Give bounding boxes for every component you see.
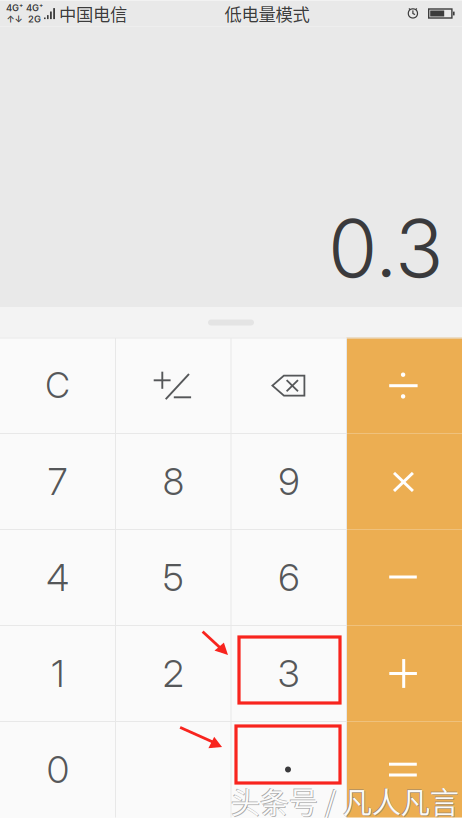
- button[interactable]: Plus: [346, 625, 462, 721]
- staticText: 9: [278, 459, 299, 504]
- staticText: 中国电信: [59, 1, 127, 26]
- staticText: 低电量模式: [224, 1, 309, 26]
- button[interactable]: 5: [115, 529, 231, 625]
- button[interactable]: 6: [231, 529, 346, 625]
- staticText: 4G⁺: [6, 2, 23, 13]
- staticText: 0: [47, 747, 69, 792]
- staticText: 1: [51, 651, 64, 696]
- staticText: ↑↓: [6, 13, 22, 25]
- button[interactable]: Minus: [346, 529, 462, 625]
- staticText: 4: [46, 555, 69, 600]
- staticText: 2G: [28, 13, 41, 25]
- staticText: 8: [163, 459, 184, 504]
- button[interactable]: Delete: [231, 337, 346, 433]
- button[interactable]: 4: [0, 529, 115, 625]
- button[interactable]: 2: [115, 625, 231, 721]
- staticText: 0.3: [328, 200, 443, 296]
- button[interactable]: 8: [115, 433, 231, 529]
- button[interactable]: Decimal point: [231, 721, 346, 817]
- staticText: 6: [278, 555, 299, 600]
- staticText: 头条号 / 凡人凡言: [231, 779, 459, 818]
- button[interactable]: Plus minus: [115, 337, 231, 433]
- button[interactable]: 0: [0, 721, 115, 817]
- button[interactable]: 1: [0, 625, 115, 721]
- staticText: 2: [163, 651, 184, 696]
- button[interactable]: 9: [231, 433, 346, 529]
- button[interactable]: Multiply: [346, 433, 462, 529]
- staticText: 7: [48, 459, 68, 504]
- button[interactable]: [115, 721, 231, 817]
- staticText: 头条号 / 凡人凡言: [230, 778, 458, 818]
- staticText: 5: [163, 555, 184, 600]
- staticText: C: [45, 364, 70, 406]
- staticText: 3: [278, 651, 300, 696]
- button[interactable]: C: [0, 337, 115, 433]
- staticText: 4G⁺: [26, 2, 43, 13]
- button[interactable]: Divide: [346, 337, 462, 433]
- staticText: 头条号 / 凡人凡言: [231, 780, 459, 818]
- button[interactable]: 3: [231, 625, 346, 721]
- button[interactable]: 7: [0, 433, 115, 529]
- button[interactable]: Equals: [346, 721, 462, 817]
